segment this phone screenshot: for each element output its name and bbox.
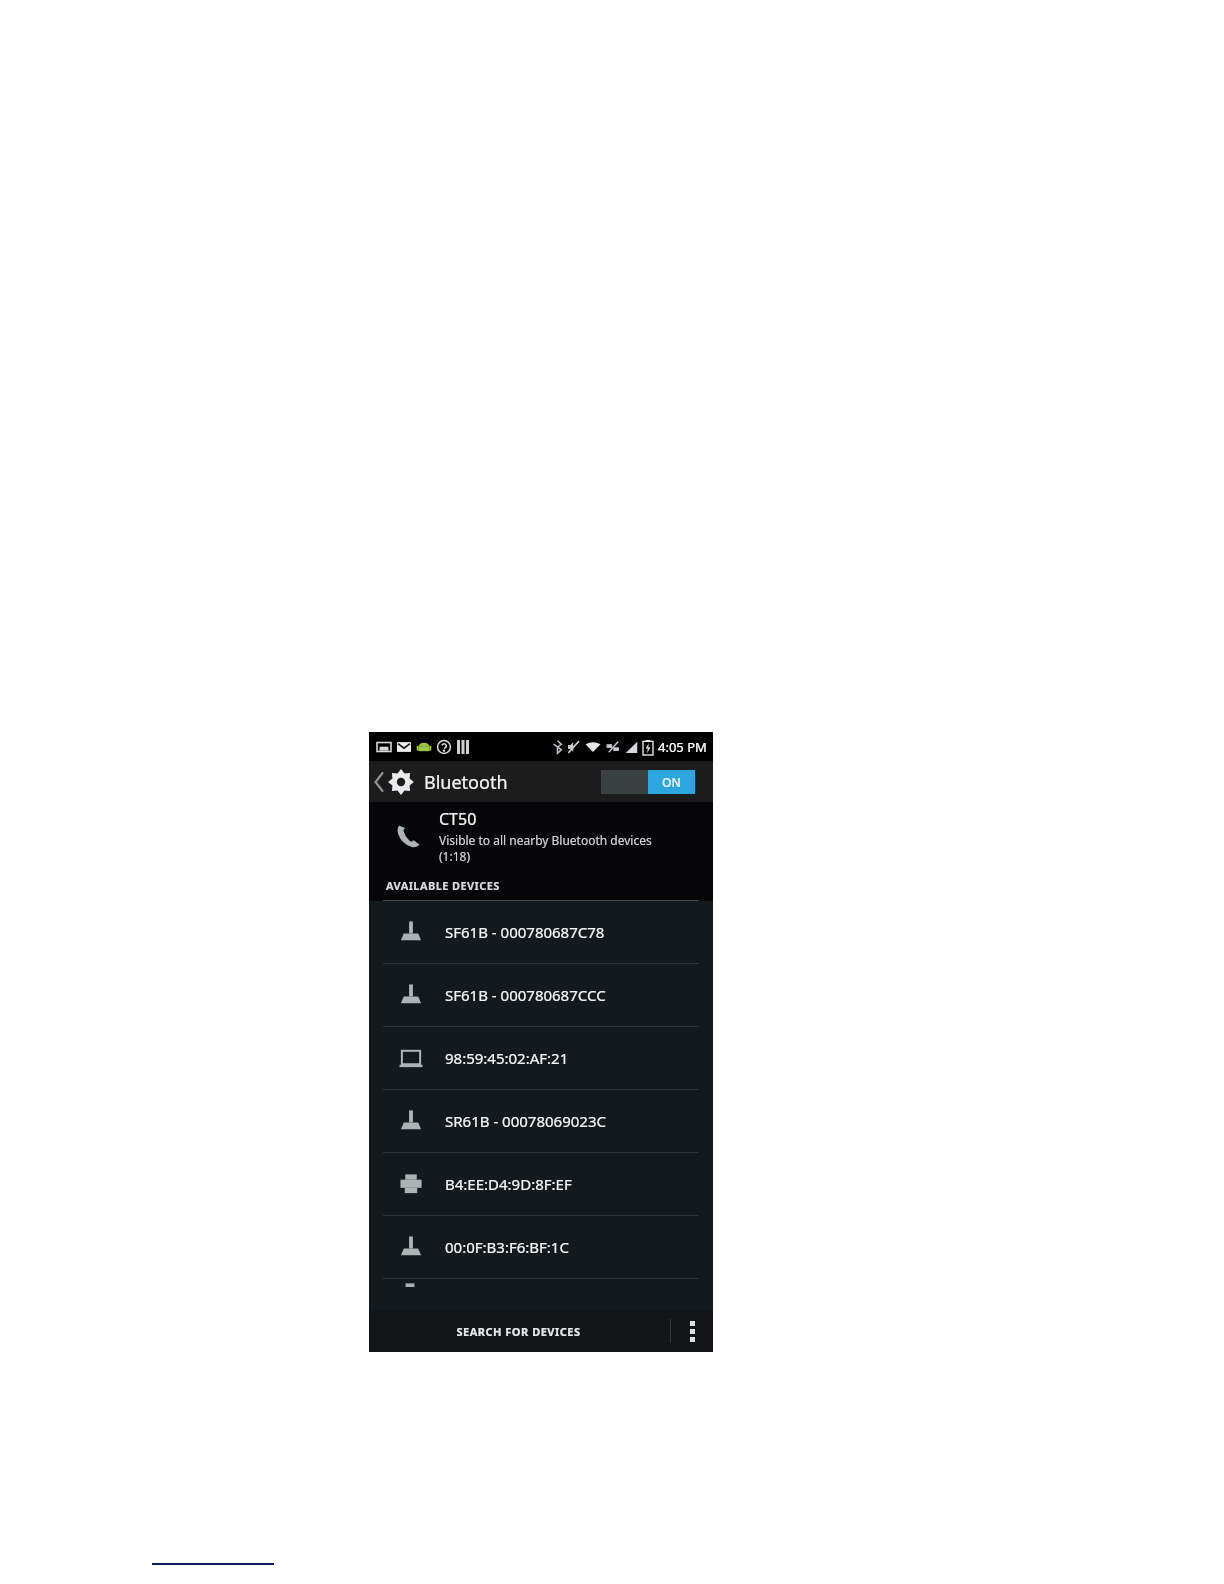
button[interactable]: CT50 xyxy=(369,802,713,870)
staticText: Bluetooth xyxy=(424,770,508,795)
staticText: 4:05 PM xyxy=(658,738,707,756)
staticText: SF61B - 000780687CCC xyxy=(445,985,606,1005)
staticText: 98:59:45:02:AF:21 xyxy=(445,1048,569,1068)
button[interactable]: SEARCH FOR DEVICES xyxy=(369,1310,667,1352)
button[interactable]: SR61B - 00078069023C xyxy=(369,1090,713,1152)
button[interactable]: 98:59:45:02:AF:21 xyxy=(369,1027,713,1089)
button[interactable]: Back xyxy=(369,764,518,800)
staticText: ON xyxy=(662,774,681,790)
staticText: AVAILABLE DEVICES xyxy=(386,878,500,893)
staticText: B4:EE:D4:9D:8F:EF xyxy=(445,1174,572,1194)
button[interactable]: SF61B - 000780687C78 xyxy=(369,901,713,963)
staticText: (1:18) xyxy=(439,848,471,864)
staticText: SF61B - 000780687C78 xyxy=(445,922,605,942)
button[interactable]: Bluetooth on xyxy=(601,770,695,794)
staticText: Visible to all nearby Bluetooth devices xyxy=(439,832,652,848)
staticText: SEARCH FOR DEVICES xyxy=(456,1324,581,1339)
staticText: 00:0F:B3:F6:BF:1C xyxy=(445,1237,569,1257)
staticText: SR61B - 00078069023C xyxy=(445,1111,606,1131)
staticText: CT50 xyxy=(439,808,477,830)
button[interactable]: 00:0F:B3:F6:BF:1C xyxy=(369,1216,713,1278)
button[interactable]: SF61B - 000780687CCC xyxy=(369,964,713,1026)
button[interactable]: More options xyxy=(671,1310,713,1352)
other: Back xyxy=(374,773,384,791)
button[interactable]: B4:EE:D4:9D:8F:EF xyxy=(369,1153,713,1215)
